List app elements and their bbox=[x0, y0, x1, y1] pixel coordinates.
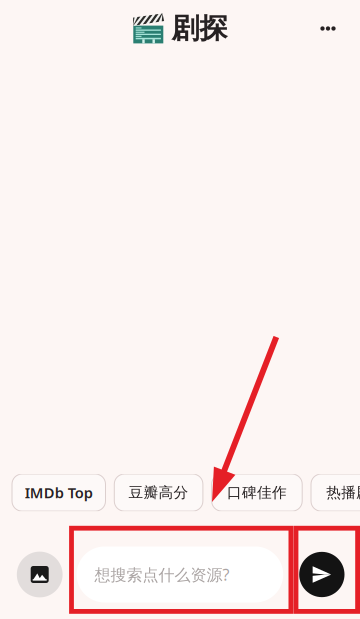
button[interactable]: 豆瓣高分 bbox=[114, 474, 203, 511]
button[interactable]: Send bbox=[299, 552, 344, 597]
button[interactable]: More options bbox=[313, 13, 343, 43]
staticText: 想搜索点什么资源? bbox=[95, 564, 230, 585]
staticText: IMDb Top bbox=[25, 483, 93, 502]
button[interactable]: 热播剧集 bbox=[311, 474, 360, 511]
staticText: 口碑佳作 bbox=[227, 484, 287, 502]
staticText: 热播剧集 bbox=[326, 484, 360, 502]
staticText: 剧探 bbox=[171, 11, 227, 46]
button[interactable]: 口碑佳作 bbox=[212, 474, 302, 511]
staticText: 豆瓣高分 bbox=[129, 484, 189, 502]
button[interactable]: 想搜索点什么资源? bbox=[77, 546, 283, 602]
button[interactable]: IMDb Top bbox=[12, 474, 105, 511]
button[interactable]: Attach image bbox=[17, 552, 63, 597]
